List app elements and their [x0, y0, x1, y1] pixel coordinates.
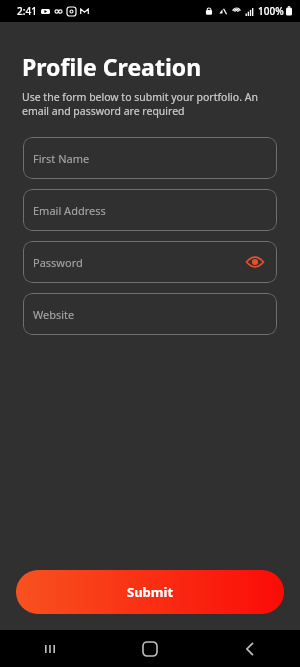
button[interactable]: Show password	[244, 251, 266, 273]
button[interactable]: First Name	[23, 137, 277, 179]
staticText: 100%	[258, 4, 284, 18]
staticText: Submit	[127, 583, 174, 601]
staticText: First Name	[33, 151, 90, 166]
button[interactable]: Website	[23, 293, 277, 335]
button[interactable]: Email Address	[23, 189, 277, 231]
staticText: 2:41	[17, 4, 37, 18]
button[interactable]: Password	[23, 241, 277, 283]
staticText: Website	[33, 307, 75, 322]
staticText: Email Address	[33, 203, 106, 218]
staticText: Use the form below to submit your portfo…	[22, 90, 280, 118]
button[interactable]: Home	[100, 630, 200, 667]
staticText: Profile Creation	[22, 51, 202, 82]
button[interactable]: Submit	[16, 570, 284, 614]
staticText: Password	[33, 255, 83, 270]
button[interactable]: Recent apps	[0, 630, 100, 667]
button[interactable]: Back	[200, 630, 300, 667]
